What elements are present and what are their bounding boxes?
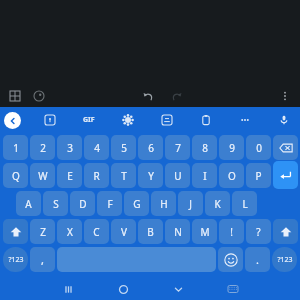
button[interactable]: S: [43, 191, 68, 216]
staticText: 8: [202, 141, 208, 155]
button[interactable]: 2: [30, 135, 55, 160]
button[interactable]: T: [111, 163, 136, 188]
button[interactable]: Insert: [6, 87, 24, 105]
button[interactable]: 3: [57, 135, 82, 160]
staticText: 0: [256, 141, 262, 155]
button[interactable]: R: [84, 163, 109, 188]
button[interactable]: ?123: [3, 247, 28, 272]
staticText: 4: [94, 141, 100, 155]
staticText: M: [200, 225, 210, 239]
button[interactable]: More: [235, 110, 255, 130]
button[interactable]: 7: [165, 135, 190, 160]
staticText: ?123: [277, 255, 293, 265]
button[interactable]: H: [151, 191, 176, 216]
button[interactable]: L: [232, 191, 257, 216]
staticText: 2: [40, 141, 46, 155]
button[interactable]: G: [124, 191, 149, 216]
button[interactable]: Enter: [273, 161, 298, 189]
button[interactable]: GIF: [79, 110, 99, 130]
button[interactable]: N: [165, 219, 190, 244]
button[interactable]: Settings: [118, 110, 138, 130]
button[interactable]: Y: [138, 163, 163, 188]
staticText: Z: [40, 225, 46, 239]
staticText: T: [121, 169, 127, 183]
button[interactable]: I: [192, 163, 217, 188]
button[interactable]: V: [111, 219, 136, 244]
button[interactable]: .: [245, 247, 270, 272]
button[interactable]: ,: [30, 247, 55, 272]
staticText: ?123: [8, 255, 24, 265]
staticText: E: [67, 169, 73, 183]
staticText: Y: [148, 169, 154, 183]
staticText: X: [67, 225, 73, 239]
button[interactable]: Emoji: [218, 247, 243, 272]
button[interactable]: Stickers: [40, 110, 60, 130]
button[interactable]: Translate: [157, 110, 177, 130]
button[interactable]: Voice input: [274, 110, 294, 130]
button[interactable]: Redo: [167, 87, 185, 105]
staticText: ,: [41, 252, 44, 267]
button[interactable]: Backspace: [273, 135, 298, 160]
button[interactable]: Back: [4, 112, 21, 129]
button[interactable]: !: [219, 219, 244, 244]
button[interactable]: 5: [111, 135, 136, 160]
staticText: I: [203, 169, 207, 183]
button[interactable]: 8: [192, 135, 217, 160]
staticText: ?: [256, 225, 261, 239]
staticText: 1: [13, 141, 19, 155]
button[interactable]: F: [97, 191, 122, 216]
staticText: 9: [229, 141, 235, 155]
staticText: P: [255, 169, 262, 183]
staticText: 7: [175, 141, 181, 155]
staticText: K: [214, 197, 221, 211]
staticText: GIF: [83, 115, 95, 125]
button[interactable]: Home: [113, 279, 133, 299]
button[interactable]: P: [246, 163, 271, 188]
button[interactable]: Undo: [139, 87, 157, 105]
button[interactable]: Space: [57, 247, 216, 272]
button[interactable]: Change keyboard: [223, 279, 243, 299]
button[interactable]: Q: [3, 163, 28, 188]
staticText: H: [160, 197, 168, 211]
staticText: .: [256, 252, 259, 267]
staticText: J: [189, 197, 192, 211]
button[interactable]: J: [178, 191, 203, 216]
button[interactable]: B: [138, 219, 163, 244]
button[interactable]: 4: [84, 135, 109, 160]
staticText: C: [93, 225, 100, 239]
button[interactable]: D: [70, 191, 95, 216]
button[interactable]: K: [205, 191, 230, 216]
button[interactable]: E: [57, 163, 82, 188]
button[interactable]: More options: [276, 87, 294, 105]
button[interactable]: 9: [219, 135, 244, 160]
button[interactable]: W: [30, 163, 55, 188]
button[interactable]: 1: [3, 135, 28, 160]
button[interactable]: ?123: [272, 247, 297, 272]
button[interactable]: C: [84, 219, 109, 244]
button[interactable]: Palette: [30, 87, 48, 105]
staticText: U: [174, 169, 182, 183]
button[interactable]: X: [57, 219, 82, 244]
button[interactable]: A: [16, 191, 41, 216]
button[interactable]: Hide keyboard: [168, 279, 188, 299]
staticText: N: [174, 225, 182, 239]
button[interactable]: 0: [246, 135, 271, 160]
staticText: 5: [121, 141, 127, 155]
button[interactable]: Z: [30, 219, 55, 244]
staticText: W: [38, 169, 48, 183]
staticText: A: [25, 197, 32, 211]
button[interactable]: Shift: [273, 219, 298, 244]
staticText: B: [147, 225, 154, 239]
button[interactable]: ?: [246, 219, 271, 244]
staticText: L: [242, 197, 248, 211]
staticText: G: [133, 197, 141, 211]
staticText: 3: [67, 141, 73, 155]
button[interactable]: U: [165, 163, 190, 188]
staticText: V: [121, 225, 127, 239]
button[interactable]: Clipboard: [196, 110, 216, 130]
button[interactable]: Recents: [58, 279, 78, 299]
button[interactable]: O: [219, 163, 244, 188]
button[interactable]: Shift: [3, 219, 28, 244]
button[interactable]: M: [192, 219, 217, 244]
button[interactable]: 6: [138, 135, 163, 160]
